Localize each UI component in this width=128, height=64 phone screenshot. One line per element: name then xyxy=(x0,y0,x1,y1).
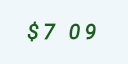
staticText: $7 09 xyxy=(27,20,101,45)
